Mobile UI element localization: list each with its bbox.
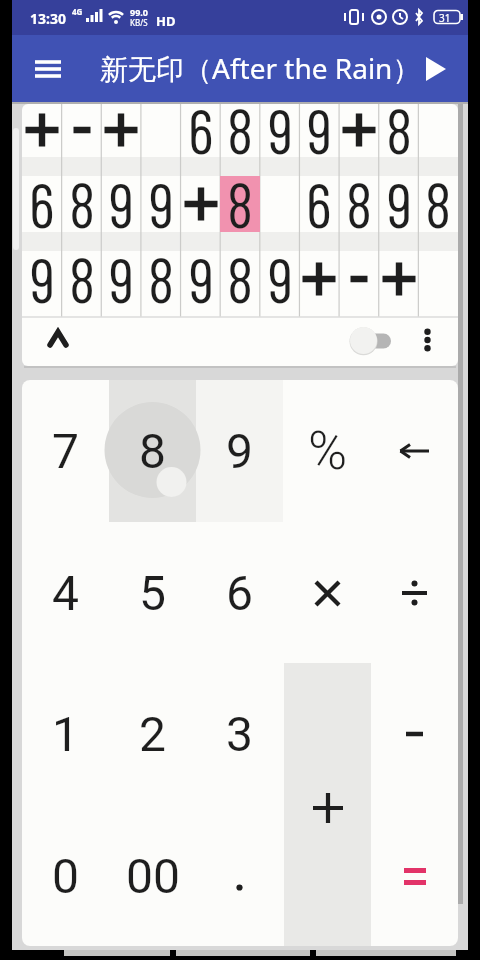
button[interactable] xyxy=(371,522,458,664)
staticText: 7 xyxy=(52,423,79,479)
button[interactable]: 3 xyxy=(196,663,283,805)
staticText: 8 xyxy=(148,241,175,315)
staticText: 9 xyxy=(268,104,293,166)
staticText: 8 xyxy=(425,166,452,240)
button[interactable]: 6 xyxy=(196,522,283,664)
staticText: HD xyxy=(156,12,176,30)
staticText: 31 xyxy=(439,11,451,25)
staticText: 8 xyxy=(227,241,254,315)
staticText: 8 xyxy=(69,166,96,240)
staticText: 9 xyxy=(149,166,174,240)
button[interactable] xyxy=(371,805,458,946)
staticText: 新无印（After the Rain） xyxy=(100,49,421,87)
button[interactable]: % xyxy=(284,380,371,522)
button[interactable]: 0 xyxy=(22,805,109,946)
button[interactable]: 1 xyxy=(22,663,109,805)
button[interactable] xyxy=(284,663,371,946)
button[interactable]: 7 xyxy=(22,380,109,522)
button[interactable]: 5 xyxy=(109,522,196,664)
staticText: 6 xyxy=(306,166,332,240)
button[interactable]: 9 xyxy=(196,380,283,522)
staticText: 9 xyxy=(387,166,412,240)
staticText: 6 xyxy=(188,104,214,166)
staticText: % xyxy=(308,420,348,482)
staticText: 13:30 xyxy=(30,9,66,28)
staticText: 4 xyxy=(52,565,79,621)
staticText: 3 xyxy=(226,706,253,762)
staticText: 8 xyxy=(386,104,413,166)
staticText: KB/S xyxy=(130,17,148,28)
staticText: 9 xyxy=(268,241,293,315)
staticText: 8 xyxy=(346,166,373,240)
staticText: 6 xyxy=(226,565,253,621)
button[interactable] xyxy=(196,805,283,946)
staticText: 5 xyxy=(139,565,166,621)
staticText: 00 xyxy=(126,848,180,904)
staticText: 8 xyxy=(227,104,254,166)
button[interactable]: 8 xyxy=(109,380,196,522)
staticText: 1 xyxy=(52,706,79,762)
button[interactable] xyxy=(405,316,449,364)
staticText: 99.0 xyxy=(130,6,148,18)
staticText: 9 xyxy=(30,241,55,315)
staticText: 8 xyxy=(69,241,96,315)
staticText: 4G xyxy=(72,6,83,17)
button[interactable]: 4 xyxy=(22,522,109,664)
staticText: 9 xyxy=(226,423,253,479)
staticText: 9 xyxy=(307,104,332,166)
staticText: 6 xyxy=(29,166,55,240)
staticText: 9 xyxy=(109,241,134,315)
button[interactable] xyxy=(371,380,458,522)
button[interactable] xyxy=(24,50,72,88)
button[interactable] xyxy=(284,522,371,664)
staticText: 0 xyxy=(52,848,79,904)
button[interactable] xyxy=(347,322,397,360)
staticText: 8 xyxy=(227,166,254,240)
staticText: 2 xyxy=(139,706,166,762)
button[interactable] xyxy=(34,318,82,366)
button[interactable]: 2 xyxy=(109,663,196,805)
staticText: 9 xyxy=(189,241,214,315)
staticText: 9 xyxy=(109,166,134,240)
button[interactable]: 00 xyxy=(109,805,196,946)
staticText: 8 xyxy=(139,423,166,479)
button[interactable] xyxy=(371,663,458,805)
